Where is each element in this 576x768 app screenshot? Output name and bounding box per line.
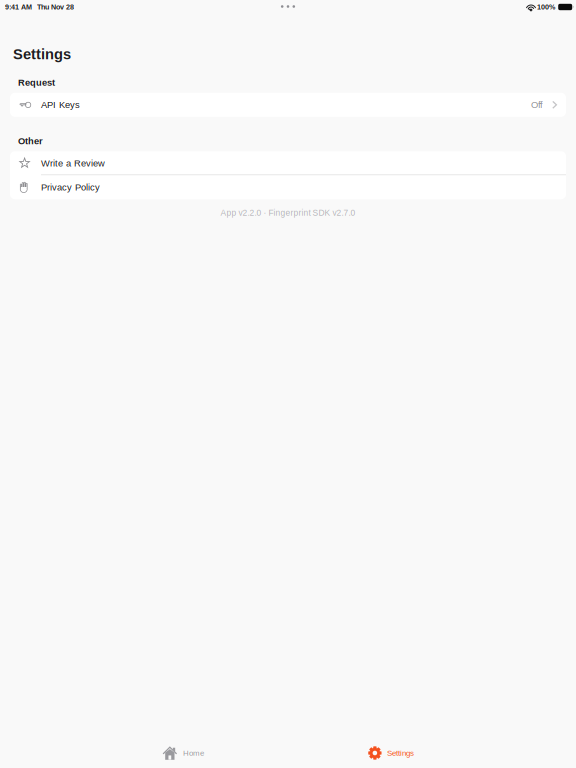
staticText: Privacy Policy [41, 182, 100, 192]
staticText: Write a Review [41, 158, 105, 168]
button[interactable]: Privacy Policy [10, 175, 566, 199]
staticText: Settings [13, 46, 71, 62]
button[interactable]: Home [156, 741, 210, 765]
staticText: 9:41 AM [5, 3, 32, 11]
staticText: App v2.2.0 · Fingerprint SDK v2.7.0 [220, 208, 355, 218]
button[interactable]: Write a Review [10, 151, 566, 175]
staticText: Thu Nov 28 [37, 3, 74, 11]
staticText: Other [18, 136, 43, 146]
button[interactable]: API Keys [10, 93, 566, 117]
button[interactable]: Settings [362, 741, 420, 765]
staticText: API Keys [41, 100, 80, 110]
staticText: Request [18, 77, 55, 88]
staticText: 100% [537, 3, 555, 11]
staticText: Home [183, 749, 204, 757]
staticText: Off [531, 100, 543, 110]
staticText: Settings [387, 749, 414, 757]
